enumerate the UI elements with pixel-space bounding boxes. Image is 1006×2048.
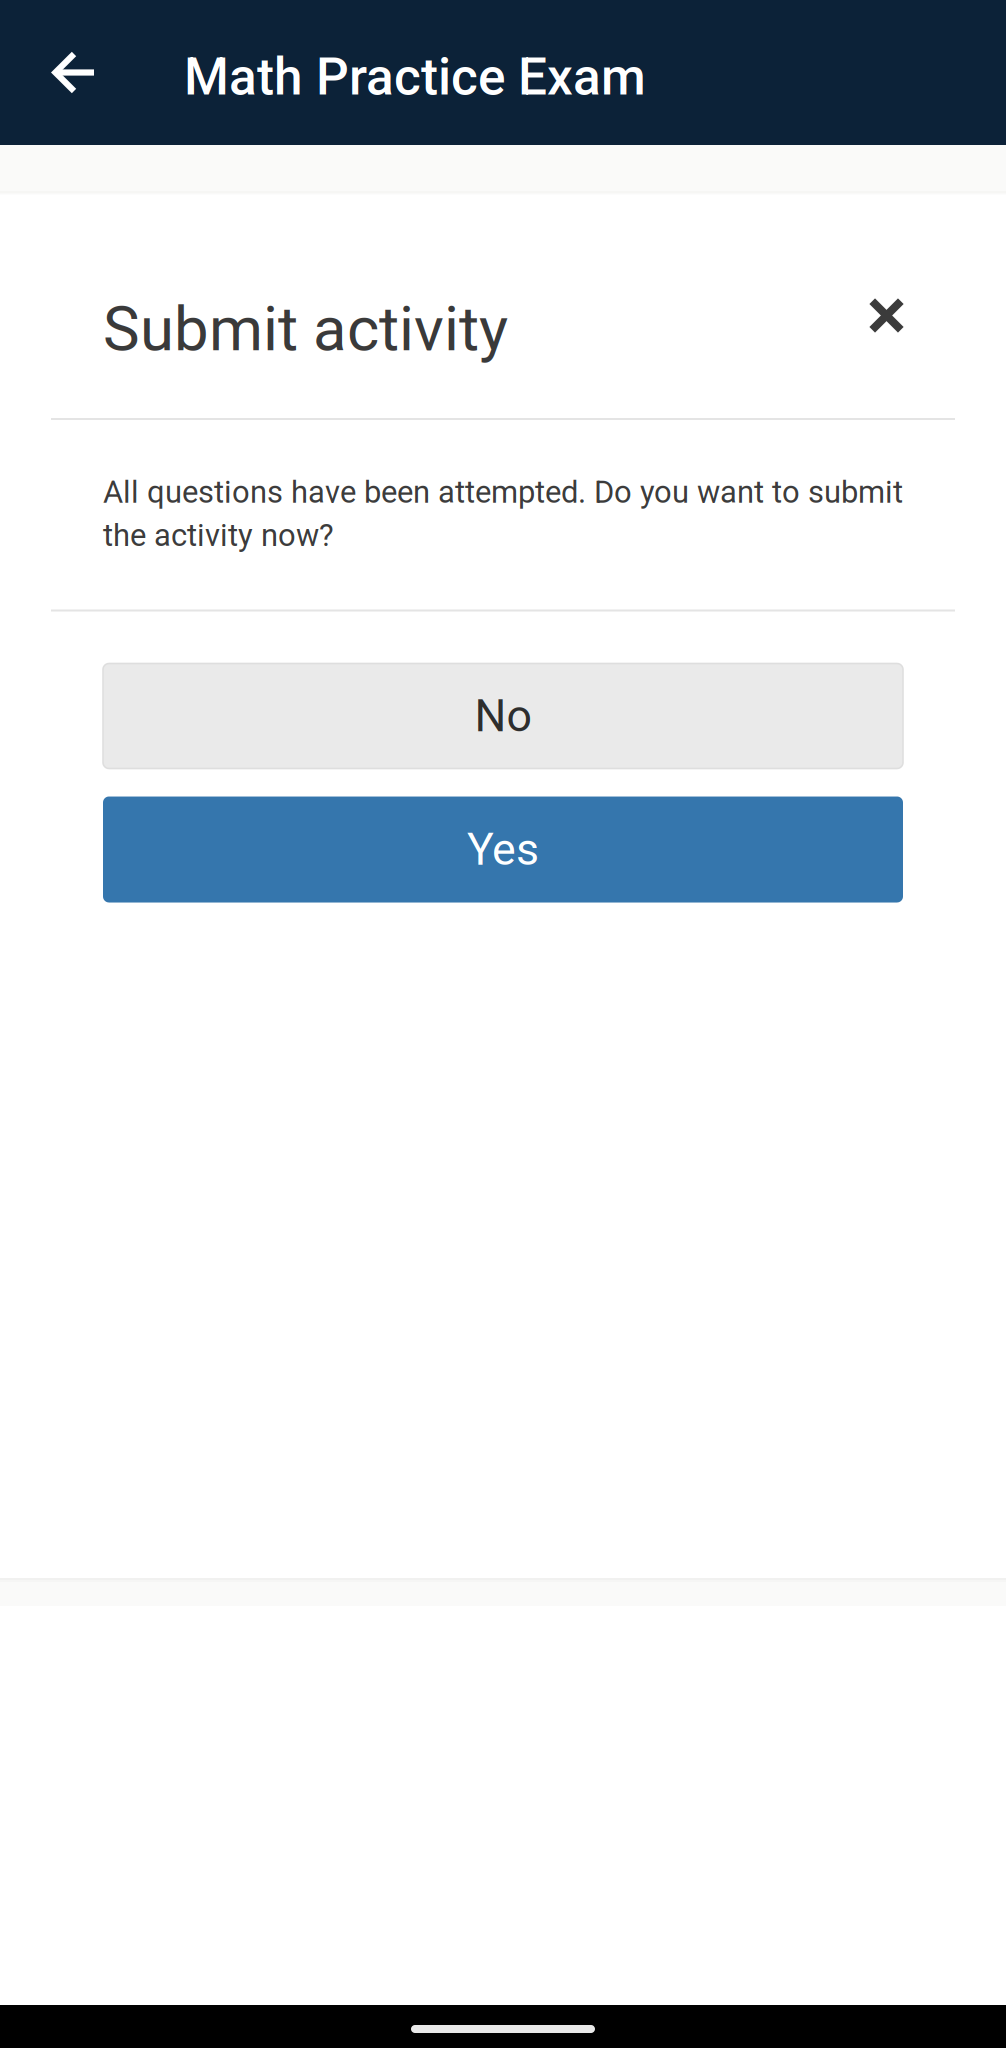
staticText: No [474,690,531,742]
staticText: Submit activity [103,293,508,365]
staticText: Yes [467,823,539,876]
button[interactable]: No [103,663,903,768]
staticText: All questions have been attempted. Do yo… [103,474,903,553]
button[interactable]: Yes [103,796,903,902]
button[interactable]: Close [849,293,924,366]
staticText: Math Practice Exam [184,47,646,107]
button[interactable]: Back [0,0,184,145]
